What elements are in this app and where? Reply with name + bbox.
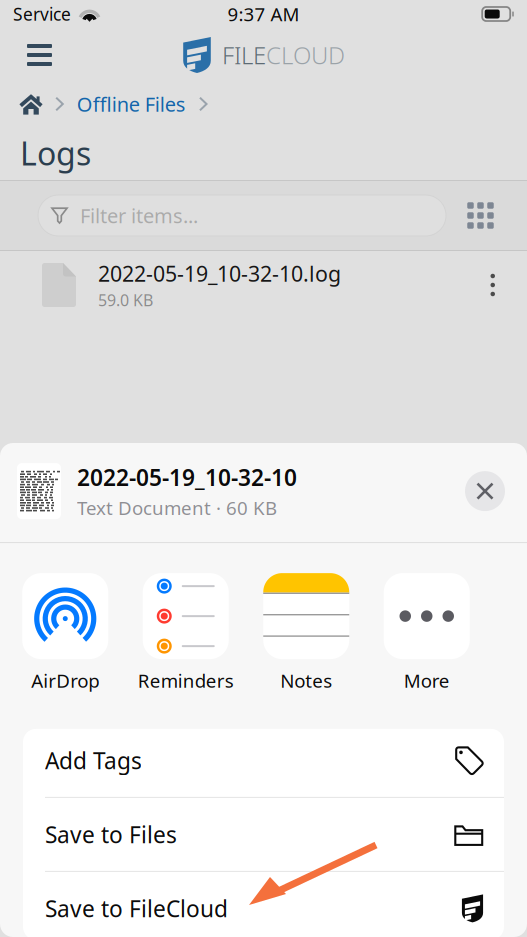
button[interactable]: AirDrop: [5, 573, 125, 693]
staticText: Text Document · 60 KB: [77, 495, 277, 520]
staticText: Logs: [20, 132, 91, 174]
staticText: Notes: [280, 668, 332, 693]
staticText: Service: [13, 2, 71, 25]
staticText: AirDrop: [31, 668, 99, 693]
button[interactable]: Menu: [15, 36, 64, 74]
button[interactable]: Add Tags: [23, 724, 504, 797]
staticText: 2022-05-19_10-32-10: [77, 462, 297, 492]
button[interactable]: Reminders: [125, 573, 246, 693]
staticText: Reminders: [138, 668, 234, 693]
staticText: FILE: [222, 39, 266, 71]
button[interactable]: More: [366, 573, 487, 693]
staticText: Offline Files: [77, 91, 186, 117]
button[interactable]: Notes: [246, 573, 366, 693]
button[interactable]: Offline Files: [77, 91, 186, 117]
staticText: Save to FileCloud: [45, 893, 228, 923]
button[interactable]: Save to FileCloud: [23, 872, 504, 937]
button[interactable]: 2022-05-19_10-32-10.log: [0, 251, 527, 319]
staticText: Add Tags: [45, 745, 142, 775]
button[interactable]: Grid view: [467, 202, 494, 229]
button[interactable]: Home: [19, 93, 43, 115]
staticText: 9:37 AM: [227, 2, 299, 26]
button[interactable]: Save to Files: [23, 798, 504, 871]
button[interactable]: Close: [465, 471, 505, 511]
staticText: Save to Files: [45, 819, 177, 849]
staticText: More: [404, 668, 450, 693]
staticText: 59.0 KB: [98, 289, 153, 311]
staticText: CLOUD: [266, 39, 345, 71]
staticText: Filter items...: [80, 202, 198, 229]
staticText: 2022-05-19_10-32-10.log: [98, 259, 341, 287]
